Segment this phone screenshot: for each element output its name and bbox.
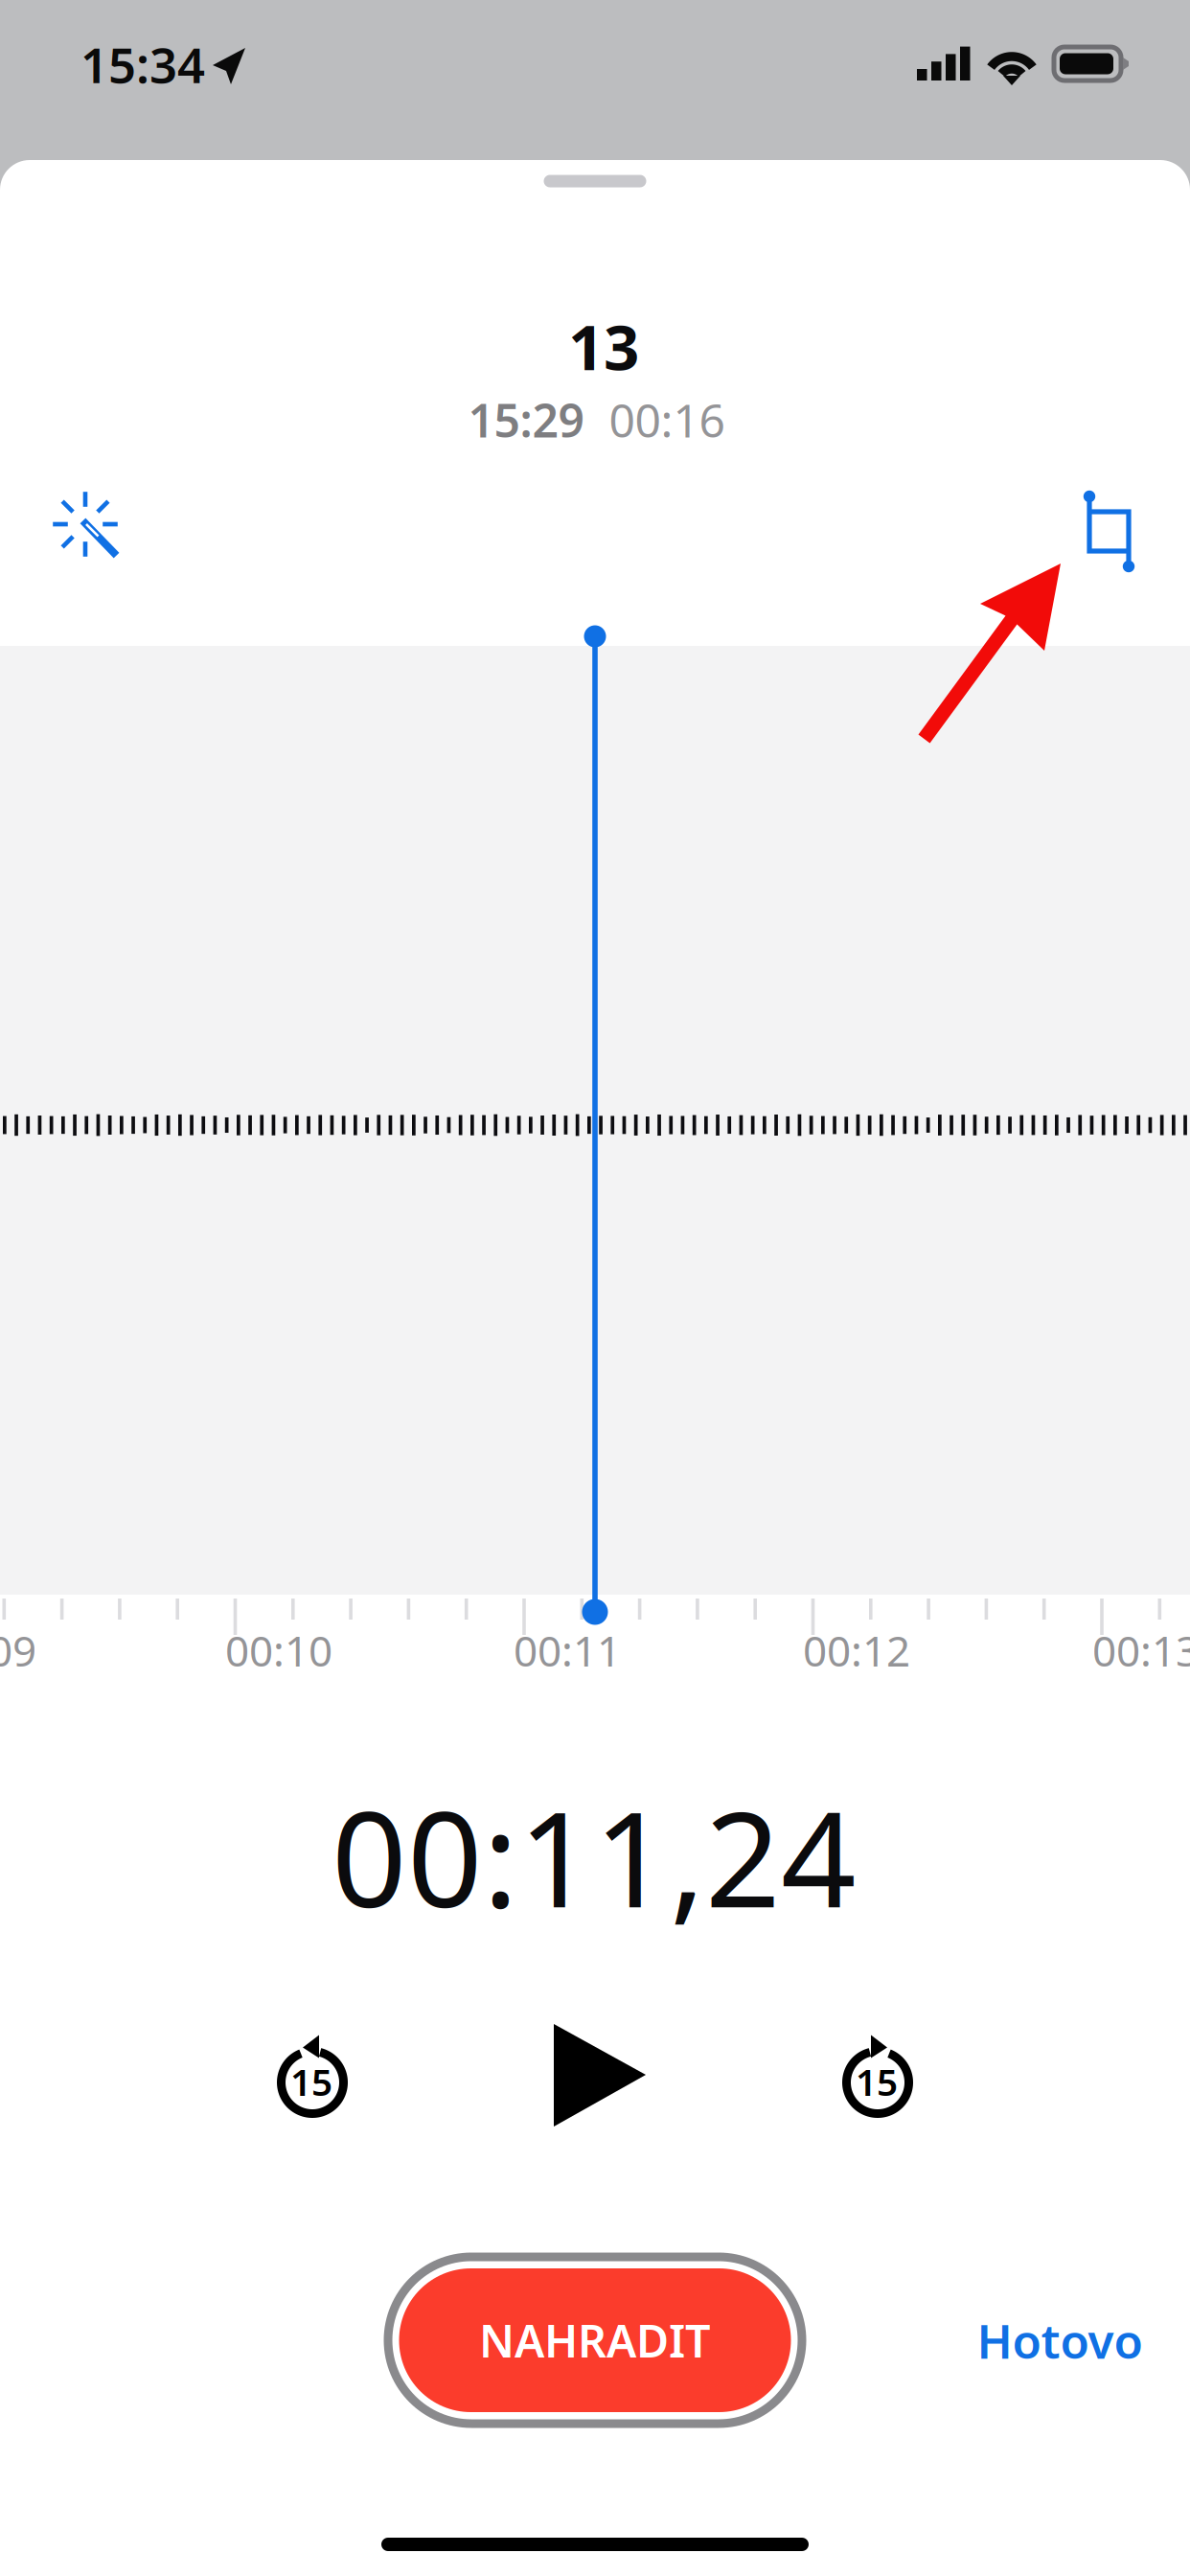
staticText: 15:29 xyxy=(468,389,584,450)
staticText: 15 xyxy=(856,2057,898,2106)
staticText: 15:34 xyxy=(80,32,205,97)
staticText: 00:16 xyxy=(609,389,725,450)
button[interactable]: Hotovo xyxy=(977,2309,1143,2372)
staticText: 00:12 xyxy=(803,1622,910,1678)
staticText: 00:11 xyxy=(514,1622,621,1678)
staticText: 00:10 xyxy=(225,1622,332,1678)
staticText: 00:13 xyxy=(1092,1622,1190,1678)
staticText: NAHRADIT xyxy=(479,2311,711,2370)
button[interactable]: Skip forward 15 seconds xyxy=(0,0,1190,2576)
button[interactable]: Enhance Recording xyxy=(0,0,1190,2576)
button[interactable]: NAHRADIT xyxy=(388,2257,802,2424)
staticText: 00:11,24 xyxy=(332,1769,857,1944)
button[interactable]: Play xyxy=(0,0,1190,2576)
staticText: 13 xyxy=(568,304,639,388)
staticText: 09 xyxy=(0,1622,36,1678)
staticText: 15 xyxy=(290,2057,332,2106)
button[interactable]: Trim xyxy=(0,0,1190,2576)
button[interactable]: Skip back 15 seconds xyxy=(0,0,1190,2576)
staticText: Hotovo xyxy=(977,2309,1143,2372)
